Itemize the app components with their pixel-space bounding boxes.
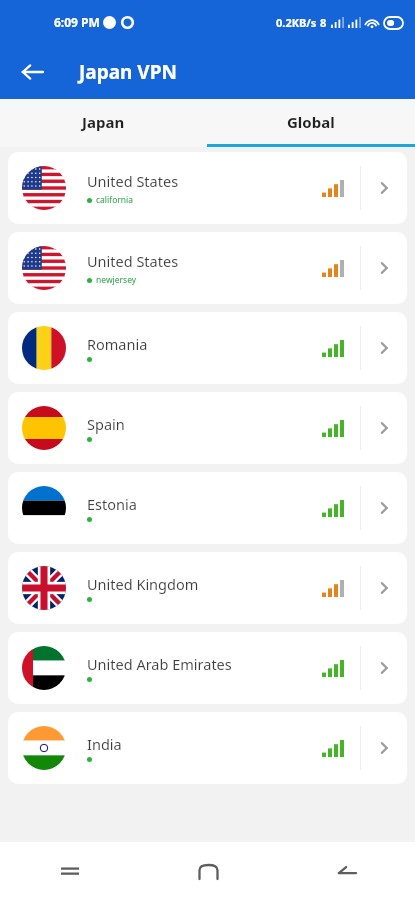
staticText: 8 [320, 15, 327, 30]
button[interactable]: Open [361, 552, 407, 624]
staticText: california [96, 194, 134, 206]
staticText: newjersey [96, 274, 137, 286]
staticText: India [87, 734, 122, 754]
button[interactable]: Recents [0, 842, 139, 900]
button[interactable]: Japan [0, 99, 207, 144]
button[interactable]: Open [361, 312, 407, 384]
staticText: United States [87, 251, 179, 271]
button[interactable]: Back [12, 52, 52, 92]
button[interactable]: Open [361, 232, 407, 304]
button[interactable]: United Arab Emirates [8, 632, 407, 704]
staticText: 6:09 PM [54, 14, 100, 30]
staticText: United States [87, 171, 179, 191]
staticText: Global [287, 112, 335, 132]
button[interactable]: Open [361, 472, 407, 544]
button[interactable]: Open [361, 392, 407, 464]
button[interactable]: Estonia [8, 472, 407, 544]
button[interactable]: Spain [8, 392, 407, 464]
staticText: 0.2KB/s [276, 15, 317, 30]
button[interactable]: Open [361, 712, 407, 784]
staticText: Japan [82, 112, 125, 132]
staticText: Romania [87, 334, 148, 354]
staticText: Spain [87, 414, 125, 434]
staticText: United Kingdom [87, 574, 199, 594]
button[interactable]: United States [8, 152, 407, 224]
button[interactable]: United Kingdom [8, 552, 407, 624]
button[interactable]: United States [8, 232, 407, 304]
button[interactable]: Open [361, 152, 407, 224]
staticText: United Arab Emirates [87, 654, 232, 674]
button[interactable]: Home [139, 842, 277, 900]
button[interactable]: Global [207, 99, 415, 144]
button[interactable]: Back [277, 842, 415, 900]
button[interactable]: India [8, 712, 407, 784]
button[interactable]: Romania [8, 312, 407, 384]
button[interactable]: Open [361, 632, 407, 704]
staticText: Japan VPN [79, 59, 177, 85]
staticText: Estonia [87, 494, 137, 514]
